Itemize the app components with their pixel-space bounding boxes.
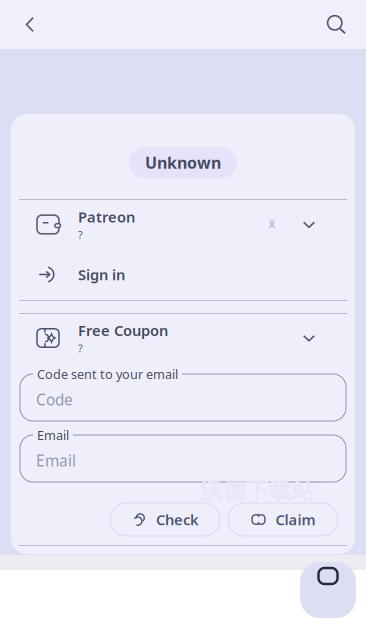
- staticText: ?: [78, 228, 83, 242]
- staticText: Email: [37, 426, 69, 444]
- staticText: Free Coupon: [78, 321, 168, 340]
- staticText: Code sent to your email: [37, 365, 178, 383]
- button[interactable]: Check: [110, 503, 220, 536]
- staticText: ?: [78, 341, 83, 355]
- staticText: Code: [36, 389, 73, 410]
- staticText: Check: [156, 510, 199, 529]
- staticText: 沃德下载站: [200, 477, 315, 505]
- button[interactable]: Compose: [300, 562, 356, 618]
- staticText: Unknown: [145, 152, 221, 173]
- staticText: Claim: [275, 510, 315, 529]
- staticText: Patreon: [78, 207, 135, 227]
- staticText: Sign in: [78, 265, 125, 284]
- staticText: Email: [36, 450, 76, 471]
- button[interactable]: Back: [8, 2, 52, 46]
- button[interactable]: Sign in: [11, 249, 355, 300]
- button[interactable]: Search: [314, 2, 358, 46]
- button[interactable]: Expand Free Coupon: [302, 331, 316, 345]
- button[interactable]: Claim: [228, 503, 338, 536]
- button[interactable]: Expand Patreon: [302, 217, 316, 231]
